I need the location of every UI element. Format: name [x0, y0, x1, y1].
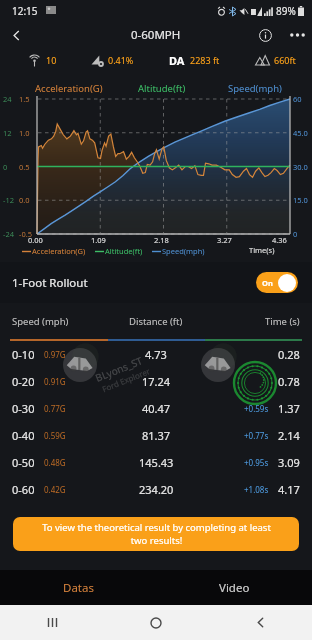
staticText: 30.0 [293, 162, 308, 172]
staticText: 12 [3, 128, 12, 138]
staticText: 0.78 [278, 374, 300, 389]
staticText: Acceleration(G) [32, 246, 86, 256]
staticText: 2.14 [278, 428, 300, 443]
staticText: 45.0 [293, 128, 308, 138]
staticText: Time (s) [265, 315, 300, 328]
staticText: Acceleration(G) [35, 82, 103, 95]
staticText: 0.77G [44, 403, 66, 414]
button[interactable]: 0-60 [0, 476, 312, 503]
staticText: Video [219, 580, 250, 596]
staticText: 0-60 [12, 482, 35, 497]
staticText: Altitude(ft) [105, 246, 143, 256]
button[interactable]: Datas [0, 570, 156, 605]
staticText: To view the theoretical result by comple… [42, 521, 271, 547]
staticText: Distance (ft) [129, 315, 183, 328]
staticText: 12:15 [12, 4, 38, 18]
button[interactable]: Home [104, 605, 208, 640]
staticText: 24 [3, 94, 12, 104]
button[interactable]: 0-30 [0, 395, 312, 422]
staticText: 1.09 [91, 235, 106, 245]
staticText: Altitude(ft) [138, 82, 186, 95]
staticText: On [262, 278, 273, 288]
staticText: 40.47 [142, 401, 171, 416]
staticText: -12 [3, 195, 14, 205]
staticText: 1-Foot Rollout [12, 275, 88, 291]
staticText: +0.95s [244, 457, 269, 468]
button[interactable]: More options [282, 22, 312, 48]
button[interactable]: Info [248, 22, 282, 48]
staticText: 0.00 [28, 235, 43, 245]
staticText: 4.36 [272, 235, 287, 245]
staticText: 1.0 [19, 128, 30, 138]
staticText: +0.59s [244, 403, 269, 414]
button[interactable]: 0-20 [0, 368, 312, 395]
staticText: 81.37 [142, 428, 171, 443]
staticText: 0-60MPH [131, 27, 181, 43]
staticText: DA [169, 53, 185, 68]
staticText: 89% [276, 4, 296, 18]
staticText: 1.5 [19, 94, 30, 104]
staticText: 0-20 [12, 374, 35, 389]
staticText: 0.42G [44, 484, 66, 495]
button[interactable]: To view the theoretical result by comple… [13, 517, 299, 551]
staticText: 0-50 [12, 455, 35, 470]
staticText: -24 [3, 229, 14, 239]
button[interactable]: Back [0, 22, 32, 48]
staticText: Datas [63, 580, 94, 596]
staticText: 1.37 [278, 401, 300, 416]
staticText: 4.17 [278, 482, 300, 497]
staticText: 0 [3, 162, 8, 172]
staticText: Speed (mph) [12, 315, 69, 328]
staticText: Time(s) [249, 245, 275, 255]
staticText: +1.08s [244, 484, 269, 495]
staticText: 0.48G [44, 457, 66, 468]
staticText: 2.18 [154, 235, 169, 245]
button[interactable]: 0-10 [0, 341, 312, 368]
staticText: 234.20 [139, 482, 174, 497]
staticText: 0-30 [12, 401, 35, 416]
button[interactable]: 0-50 [0, 449, 312, 476]
staticText: 0.28 [278, 347, 300, 362]
staticText: 3.09 [278, 455, 300, 470]
staticText: 4.73 [145, 347, 167, 362]
staticText: 0.59G [44, 430, 66, 441]
staticText: 0.97G [44, 349, 66, 360]
staticText: 0.41% [108, 54, 134, 66]
button[interactable]: Recents [0, 605, 104, 640]
staticText: Speed(mph) [228, 82, 282, 95]
staticText: 0.91G [44, 376, 66, 387]
staticText: 0-40 [12, 428, 35, 443]
staticText: -0.5 [19, 229, 33, 239]
staticText: 0.0 [19, 195, 30, 205]
staticText: +0.77s [244, 430, 269, 441]
staticText: 0 [293, 229, 298, 239]
staticText: Ford Explorer [100, 365, 152, 394]
staticText: 15.0 [293, 195, 308, 205]
staticText: 10 [46, 54, 57, 66]
button[interactable]: Video [156, 570, 312, 605]
staticText: 3.27 [217, 235, 232, 245]
staticText: 2283 ft [190, 54, 220, 66]
staticText: 0.5 [19, 162, 30, 172]
staticText: 145.43 [139, 455, 174, 470]
staticText: 60 [293, 94, 302, 104]
button[interactable]: Back [208, 605, 312, 640]
staticText: 660ft [274, 54, 296, 66]
staticText: Speed(mph) [162, 246, 205, 256]
button[interactable]: 0-40 [0, 422, 312, 449]
button[interactable]: 1-Foot Rollout [0, 262, 312, 303]
staticText: 0-10 [12, 347, 35, 362]
staticText: BLyons_ST [93, 353, 145, 385]
staticText: 17.24 [142, 374, 171, 389]
